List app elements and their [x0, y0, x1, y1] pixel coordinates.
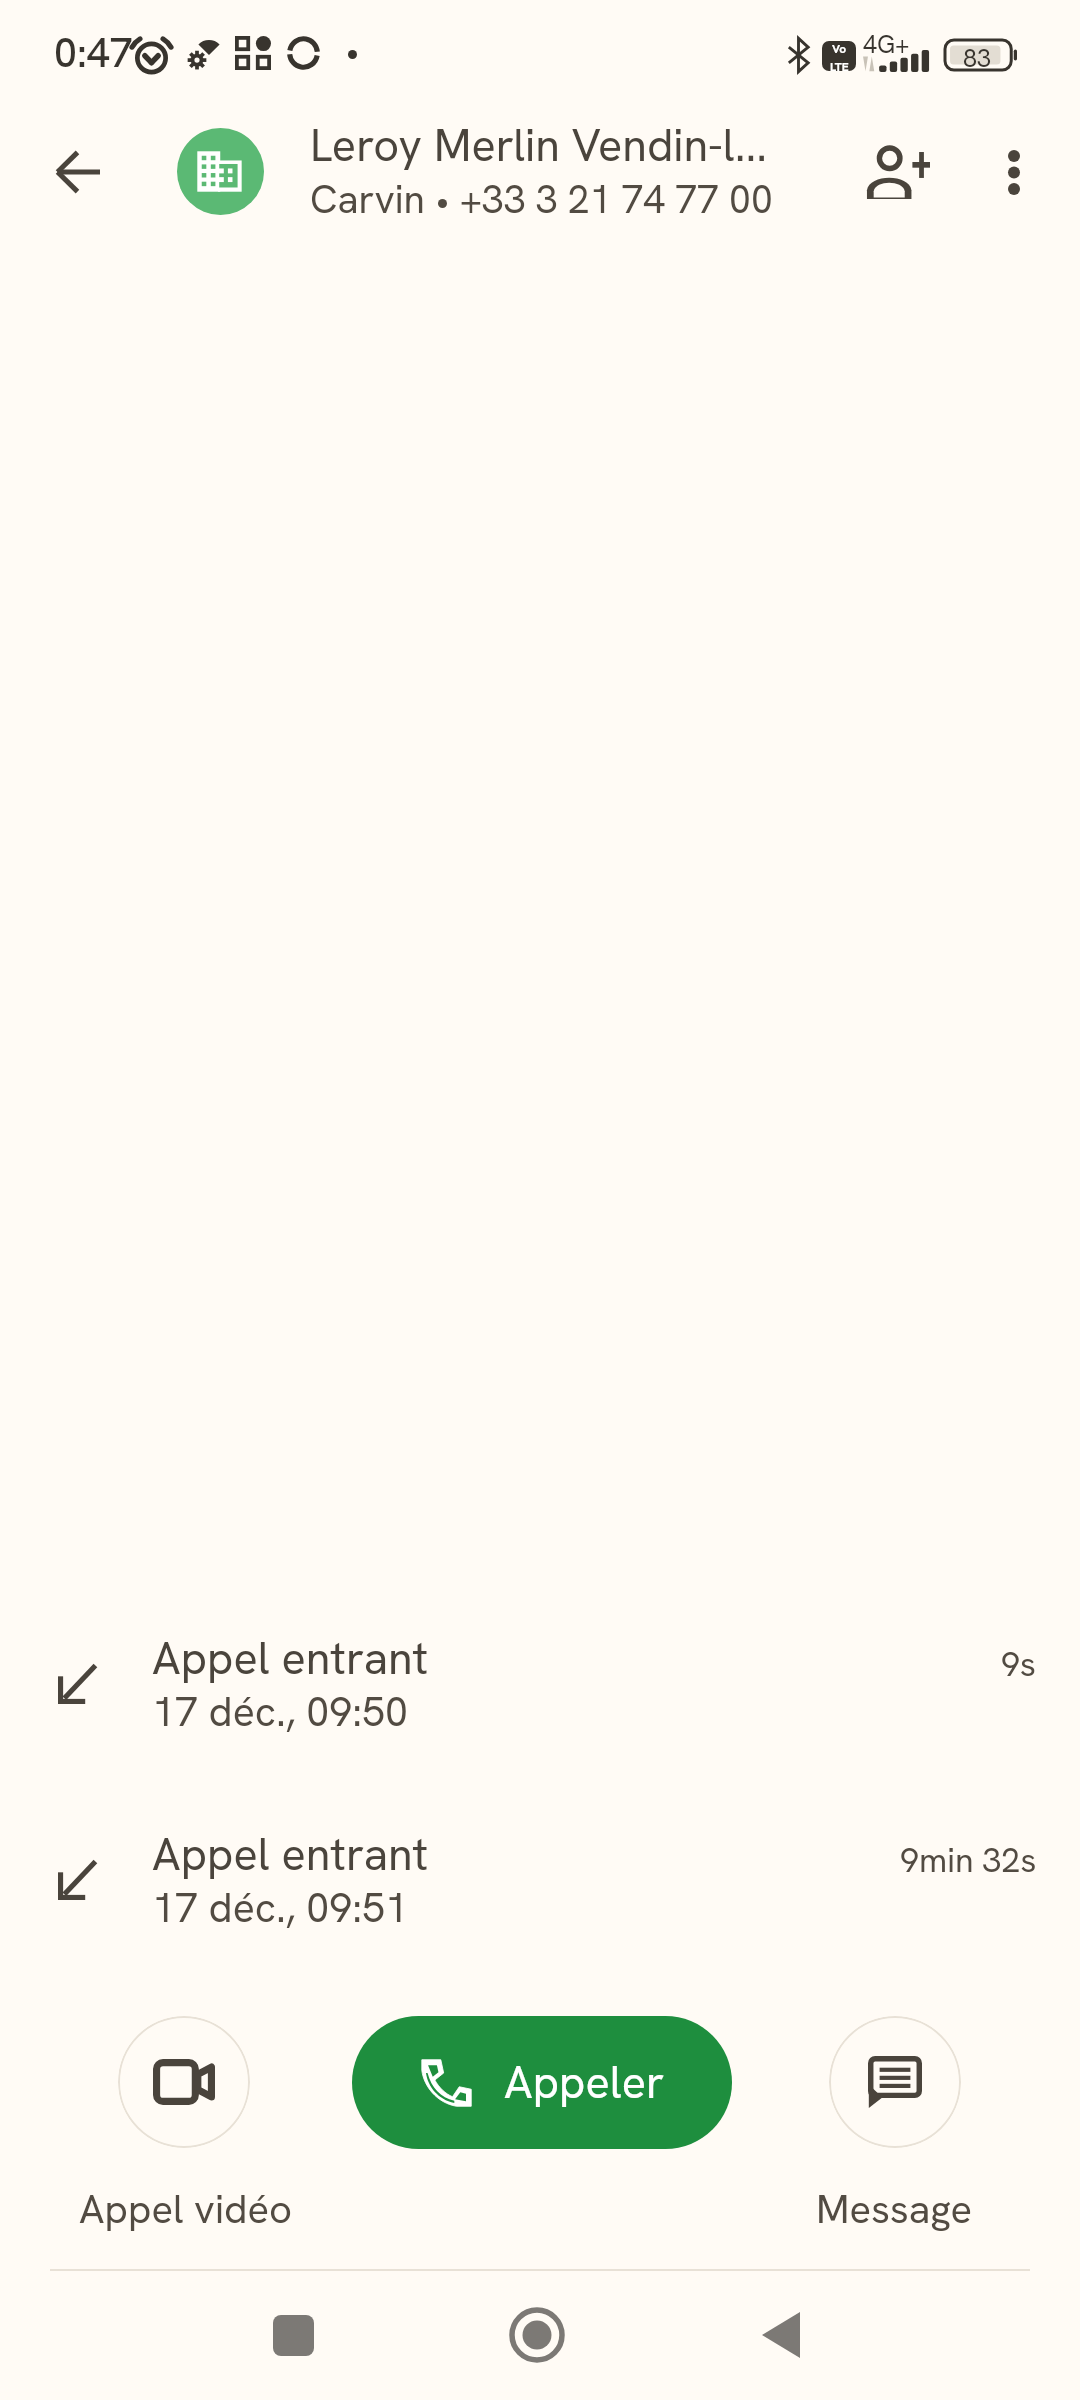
button[interactable]: Appel vidéo — [118, 2016, 250, 2148]
button[interactable]: Ajouter un contact — [850, 124, 946, 220]
staticText: 9min 32s — [900, 1838, 1037, 1882]
staticText: 17 déc., 09:50 — [152, 1685, 409, 1738]
staticText: 0:47 — [54, 26, 133, 79]
staticText: Message — [816, 2183, 973, 2235]
staticText: Appeler — [504, 2053, 665, 2112]
staticText: 9s — [1001, 1642, 1037, 1686]
staticText: Vo — [832, 41, 847, 57]
staticText: Carvin — [310, 174, 425, 225]
staticText: 4G+ — [863, 28, 910, 61]
button[interactable]: Retour — [726, 2280, 836, 2390]
staticText: 83 — [963, 42, 992, 75]
staticText: Leroy Merlin Vendin-l... — [310, 116, 768, 175]
button[interactable]: Aperçu — [238, 2280, 348, 2390]
button[interactable]: Retour — [29, 124, 125, 220]
staticText: Appel entrant — [152, 1825, 429, 1884]
staticText: 17 déc., 09:51 — [152, 1881, 409, 1934]
button[interactable]: Appel entrant — [0, 1798, 1080, 1956]
button[interactable]: Message — [829, 2016, 961, 2148]
staticText: Appel entrant — [152, 1629, 429, 1688]
button[interactable]: Appel entrant — [0, 1602, 1080, 1760]
staticText: +33 3 21 74 77 00 — [460, 174, 773, 225]
button[interactable]: Plus d'options — [966, 124, 1062, 220]
staticText: Appel vidéo — [79, 2183, 293, 2235]
button[interactable]: Appeler — [352, 2016, 732, 2149]
staticText: LTE — [830, 59, 849, 71]
button[interactable]: Accueil — [482, 2280, 592, 2390]
